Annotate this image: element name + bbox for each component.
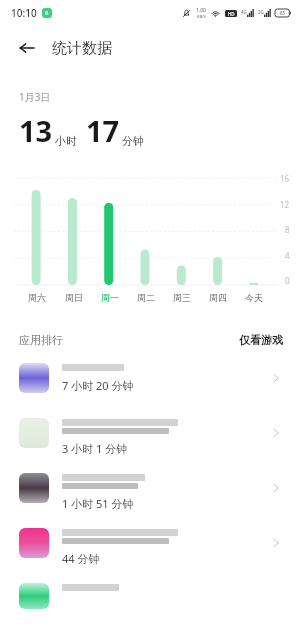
staticText: 44 分钟: [62, 551, 100, 566]
button[interactable]: 仅看游戏: [239, 333, 283, 347]
button[interactable]: [0, 577, 300, 609]
staticText: 周二: [137, 292, 155, 303]
staticText: 17: [86, 111, 120, 150]
button[interactable]: 3 小时 1 分钟: [0, 412, 300, 467]
staticText: 16: [280, 173, 290, 184]
other: Open details: [269, 426, 283, 440]
button[interactable]: 44 分钟: [0, 522, 300, 577]
staticText: 1.00: [196, 7, 206, 14]
staticText: 周一: [101, 292, 119, 303]
staticText: 3 小时 1 分钟: [62, 441, 128, 456]
staticText: 仅看游戏: [239, 333, 283, 347]
staticText: 2G: [258, 9, 264, 15]
button[interactable]: Back: [14, 35, 40, 61]
other: Open details: [269, 536, 283, 550]
staticText: 8: [45, 9, 49, 17]
staticText: 85: [280, 10, 286, 16]
button[interactable]: 7 小时 20 分钟: [0, 357, 300, 412]
staticText: 周四: [209, 292, 227, 303]
staticText: 12: [280, 199, 290, 210]
staticText: HD: [228, 11, 235, 17]
staticText: 小时: [55, 134, 77, 148]
staticText: 应用排行: [19, 333, 63, 347]
other: Open details: [269, 481, 283, 495]
staticText: KB/S: [197, 14, 206, 19]
staticText: 10:10: [11, 6, 37, 20]
staticText: 统计数据: [52, 39, 112, 58]
staticText: 周日: [65, 292, 83, 303]
staticText: 1 小时 51 分钟: [62, 496, 134, 511]
button[interactable]: 1 小时 51 分钟: [0, 467, 300, 522]
staticText: 4: [285, 250, 290, 261]
staticText: 13: [19, 111, 53, 150]
staticText: 今天: [245, 292, 263, 303]
staticText: 周六: [28, 292, 46, 303]
staticText: 周三: [173, 292, 191, 303]
staticText: 4G: [241, 9, 247, 15]
staticText: 1月3日: [19, 90, 51, 104]
staticText: 0: [285, 275, 290, 286]
staticText: 分钟: [122, 134, 144, 148]
staticText: 8: [285, 224, 290, 235]
staticText: 7 小时 20 分钟: [62, 378, 134, 393]
other: Open details: [269, 371, 283, 385]
